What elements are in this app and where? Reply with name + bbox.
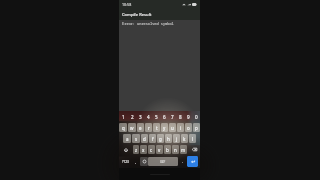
button[interactable]: l <box>189 134 196 143</box>
staticText: o <box>187 125 190 131</box>
staticText: e <box>139 125 142 131</box>
button[interactable]: o <box>185 123 192 132</box>
staticText: 5 <box>155 114 158 120</box>
button[interactable]: y <box>161 123 168 132</box>
button[interactable]: p <box>193 123 200 132</box>
button[interactable]: 5 <box>152 111 160 122</box>
button[interactable]: , <box>132 155 140 168</box>
staticText: GIF <box>160 160 166 164</box>
staticText: r <box>148 125 150 131</box>
staticText: y <box>163 125 166 131</box>
button[interactable]: b <box>164 145 171 154</box>
staticText: 10:58 <box>122 2 132 7</box>
staticText: p <box>195 125 198 131</box>
button[interactable]: h <box>165 134 172 143</box>
button[interactable]: 6 <box>160 111 168 122</box>
button[interactable]: w <box>128 123 136 132</box>
button[interactable]: Enter <box>187 156 198 167</box>
button[interactable]: x <box>140 145 147 154</box>
button[interactable]: Emoji <box>140 157 148 166</box>
staticText: 1 <box>122 114 125 120</box>
staticText: t <box>156 125 158 131</box>
staticText: . <box>182 159 184 164</box>
staticText: 9 <box>187 114 190 120</box>
staticText: a <box>126 136 129 142</box>
button[interactable]: u <box>169 123 176 132</box>
staticText: 2 <box>131 114 134 120</box>
staticText: i <box>180 125 182 131</box>
staticText: k <box>183 136 186 142</box>
staticText: 8 <box>179 114 182 120</box>
button[interactable]: d <box>141 134 148 143</box>
staticText: , <box>135 159 137 164</box>
staticText: 4 <box>147 114 150 120</box>
staticText: 3 <box>139 114 142 120</box>
staticText: g <box>159 136 162 142</box>
staticText: m <box>181 147 186 153</box>
staticText: ?123 <box>122 160 129 164</box>
staticText: 7 <box>171 114 174 120</box>
button[interactable]: . <box>178 155 187 168</box>
staticText: w <box>130 125 134 131</box>
button[interactable]: 2 <box>128 111 136 122</box>
button[interactable]: 4 <box>144 111 152 122</box>
button[interactable]: a <box>123 134 131 143</box>
button[interactable]: r <box>145 123 152 132</box>
button[interactable]: j <box>173 134 180 143</box>
button[interactable]: 1 <box>119 111 128 122</box>
button[interactable]: 9 <box>184 111 192 122</box>
button[interactable]: ?123 <box>119 155 132 168</box>
staticText: h <box>167 136 170 142</box>
button[interactable]: g <box>157 134 164 143</box>
button[interactable]: c <box>148 145 155 154</box>
staticText: f <box>152 136 154 142</box>
button[interactable]: m <box>180 145 187 154</box>
button[interactable]: 3 <box>136 111 144 122</box>
button[interactable]: v <box>156 145 163 154</box>
staticText: u <box>171 125 174 131</box>
button[interactable]: Backspace <box>188 144 200 155</box>
staticText: n <box>174 147 177 153</box>
staticText: x <box>142 147 145 153</box>
button[interactable]: Space <box>148 157 178 166</box>
button[interactable]: 8 <box>176 111 184 122</box>
staticText: z <box>135 147 138 153</box>
staticText: s <box>135 136 138 142</box>
staticText: c <box>150 147 153 153</box>
button[interactable]: s <box>132 134 140 143</box>
staticText: j <box>176 136 178 142</box>
button[interactable]: t <box>153 123 160 132</box>
staticText: Error: unresolved symbol <box>122 21 174 26</box>
staticText: Compile Result <box>122 12 152 18</box>
button[interactable]: k <box>181 134 188 143</box>
staticText: q <box>122 125 125 131</box>
button[interactable]: 7 <box>168 111 176 122</box>
staticText: l <box>192 136 194 142</box>
button[interactable]: i <box>177 123 184 132</box>
button[interactable]: q <box>119 123 127 132</box>
button[interactable]: z <box>133 145 139 154</box>
button[interactable]: n <box>172 145 179 154</box>
button[interactable]: f <box>149 134 156 143</box>
staticText: d <box>143 136 146 142</box>
staticText: v <box>158 147 161 153</box>
staticText: b <box>166 147 169 153</box>
button[interactable]: Shift <box>119 144 132 155</box>
staticText: 0 <box>195 114 198 120</box>
button[interactable]: 0 <box>192 111 200 122</box>
staticText: 6 <box>163 114 166 120</box>
button[interactable]: e <box>137 123 144 132</box>
